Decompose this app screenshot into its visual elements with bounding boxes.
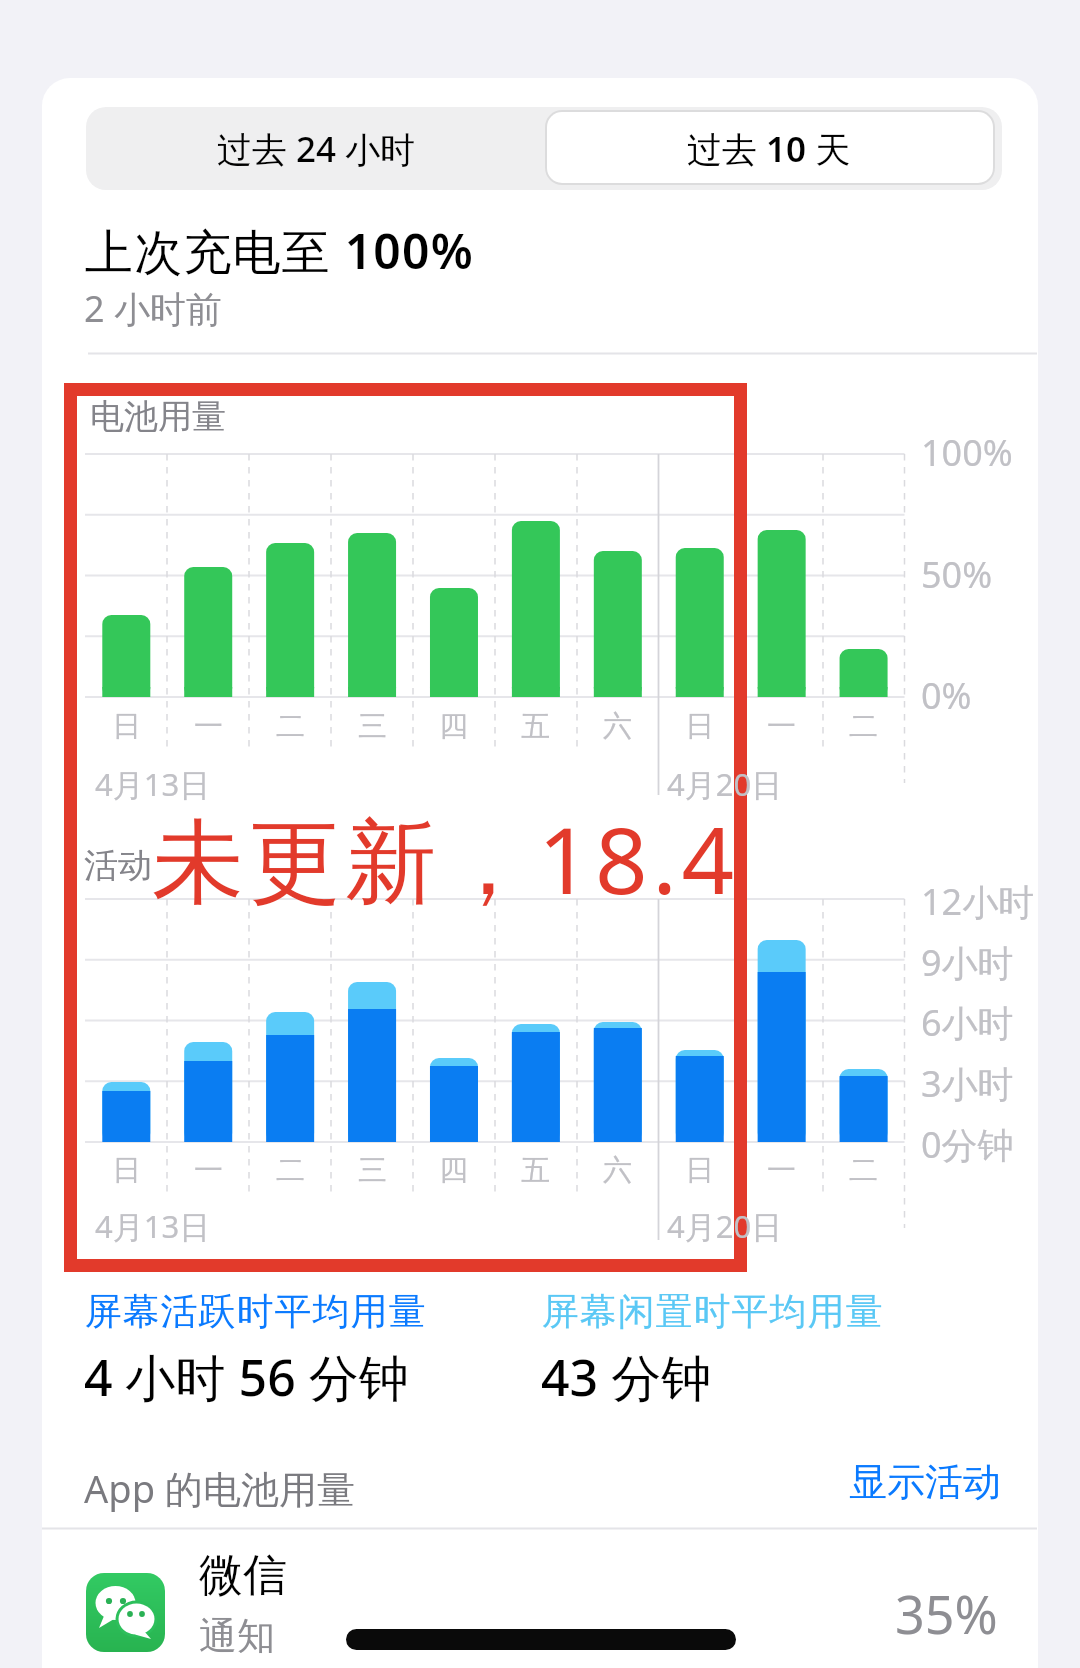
staticText: 三 (358, 708, 387, 745)
staticText: 二 (849, 708, 878, 745)
staticText: 9小时 (921, 938, 1014, 987)
staticText: 4 小时 56 分钟 (84, 1343, 409, 1411)
staticText: 4月13日 (95, 1205, 211, 1247)
staticText: 电池用量 (90, 395, 226, 438)
staticText: 4月13日 (95, 763, 211, 805)
staticText: 二 (849, 1152, 878, 1189)
staticText: 日 (112, 708, 141, 745)
staticText: 一 (767, 1152, 796, 1189)
staticText: 日 (112, 1152, 141, 1189)
staticText: 四 (439, 708, 468, 745)
staticText: 过去 24 小时 (217, 125, 416, 173)
button[interactable]: 微信 (42, 1530, 1038, 1668)
staticText: 微信 (199, 1548, 287, 1603)
staticText: 一 (194, 1152, 223, 1189)
staticText: 日 (685, 1152, 714, 1189)
staticText: 一 (194, 708, 223, 745)
staticText: 6小时 (921, 998, 1014, 1047)
button[interactable]: 过去 24 小时 (86, 107, 546, 190)
staticText: 屏幕闲置时平均用量 (541, 1288, 883, 1335)
staticText: 日 (685, 708, 714, 745)
staticText: 0分钟 (921, 1120, 1014, 1169)
staticText: 通知 (199, 1612, 275, 1660)
staticText: 4月20日 (667, 763, 783, 805)
staticText: 100% (921, 428, 1013, 477)
staticText: 活动 (84, 844, 152, 887)
staticText: App 的电池用量 (84, 1462, 355, 1514)
staticText: 过去 10 天 (687, 125, 851, 173)
staticText: 12小时 (921, 877, 1035, 926)
staticText: 六 (603, 1152, 632, 1189)
staticText: 4月20日 (667, 1205, 783, 1247)
staticText: 四 (439, 1152, 468, 1189)
staticText: 六 (603, 708, 632, 745)
staticText: 0% (921, 671, 972, 720)
staticText: 上次充电至 100% (85, 218, 474, 284)
staticText: 50% (921, 550, 993, 599)
staticText: 3小时 (921, 1059, 1014, 1108)
staticText: 2 小时前 (84, 284, 222, 333)
staticText: 35% (895, 1578, 998, 1649)
staticText: 屏幕活跃时平均用量 (84, 1288, 426, 1335)
staticText: 43 分钟 (541, 1343, 712, 1411)
button[interactable]: 过去 10 天 (539, 107, 999, 190)
staticText: 五 (521, 708, 550, 745)
staticText: 二 (276, 708, 305, 745)
staticText: 未更新，18.4 (152, 796, 739, 922)
staticText: 二 (276, 1152, 305, 1189)
staticText: 一 (767, 708, 796, 745)
staticText: 五 (521, 1152, 550, 1189)
staticText: 三 (358, 1152, 387, 1189)
staticText: 显示活动 (849, 1458, 1001, 1506)
button[interactable]: 显示活动 (801, 1458, 1001, 1508)
